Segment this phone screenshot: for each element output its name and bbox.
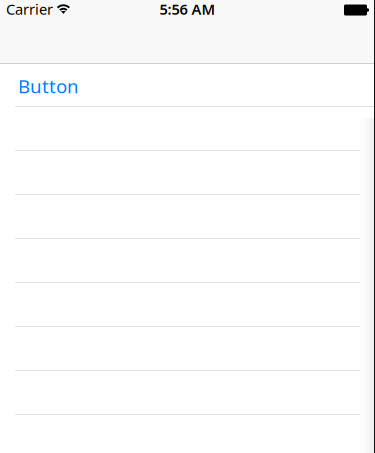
button[interactable] (0, 327, 375, 371)
staticText: Button (18, 74, 79, 98)
button[interactable]: Button (0, 64, 375, 107)
button[interactable] (0, 239, 375, 283)
button[interactable] (0, 107, 375, 151)
button[interactable] (0, 151, 375, 195)
button[interactable] (0, 195, 375, 239)
staticText: Carrier (6, 0, 53, 19)
button[interactable] (0, 283, 375, 327)
staticText: 5:56 AM (159, 0, 215, 19)
button[interactable] (0, 371, 375, 415)
